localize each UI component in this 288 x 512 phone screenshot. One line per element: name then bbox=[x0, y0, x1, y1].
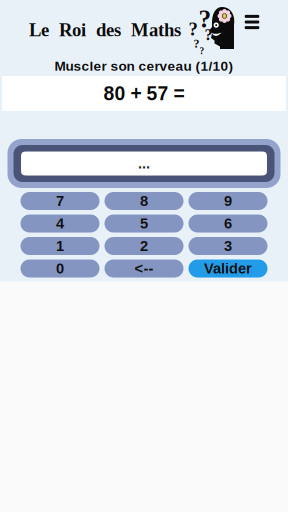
button[interactable]: <-- bbox=[104, 259, 183, 277]
staticText: 7 bbox=[56, 193, 64, 209]
button[interactable]: 6 bbox=[188, 214, 267, 232]
staticText: 3 bbox=[224, 238, 232, 254]
staticText: <-- bbox=[134, 260, 153, 277]
button[interactable]: 8 bbox=[104, 192, 183, 210]
button[interactable]: 9 bbox=[188, 192, 267, 210]
staticText: ? bbox=[204, 26, 212, 44]
button[interactable]: 2 bbox=[104, 237, 183, 255]
button[interactable]: Valider bbox=[188, 259, 267, 277]
staticText: ? bbox=[199, 46, 204, 56]
staticText: 80 + 57 = bbox=[103, 83, 184, 104]
staticText: ? bbox=[188, 19, 197, 40]
staticText: Valider bbox=[204, 260, 252, 277]
button[interactable]: 4 bbox=[20, 214, 99, 232]
staticText: 6 bbox=[224, 215, 232, 232]
staticText: Le Roi des Maths bbox=[29, 19, 181, 40]
staticText: ? bbox=[193, 37, 199, 50]
staticText: 4 bbox=[56, 215, 64, 232]
button[interactable]: 5 bbox=[104, 214, 183, 232]
staticText: ? bbox=[198, 5, 211, 33]
staticText: Muscler son cerveau (1/10) bbox=[54, 58, 233, 74]
staticText: 2 bbox=[140, 238, 148, 254]
button[interactable]: 0 bbox=[20, 259, 99, 277]
staticText: ... bbox=[138, 155, 150, 172]
staticText: 0 bbox=[56, 260, 64, 277]
staticText: 8 bbox=[140, 193, 148, 209]
staticText: 1 bbox=[56, 238, 64, 254]
button[interactable]: 1 bbox=[20, 237, 99, 255]
staticText: 5 bbox=[140, 215, 148, 232]
staticText: 9 bbox=[224, 193, 232, 209]
button[interactable]: 3 bbox=[188, 237, 267, 255]
button[interactable]: Menu bbox=[235, 7, 269, 37]
button[interactable]: 7 bbox=[20, 192, 99, 210]
